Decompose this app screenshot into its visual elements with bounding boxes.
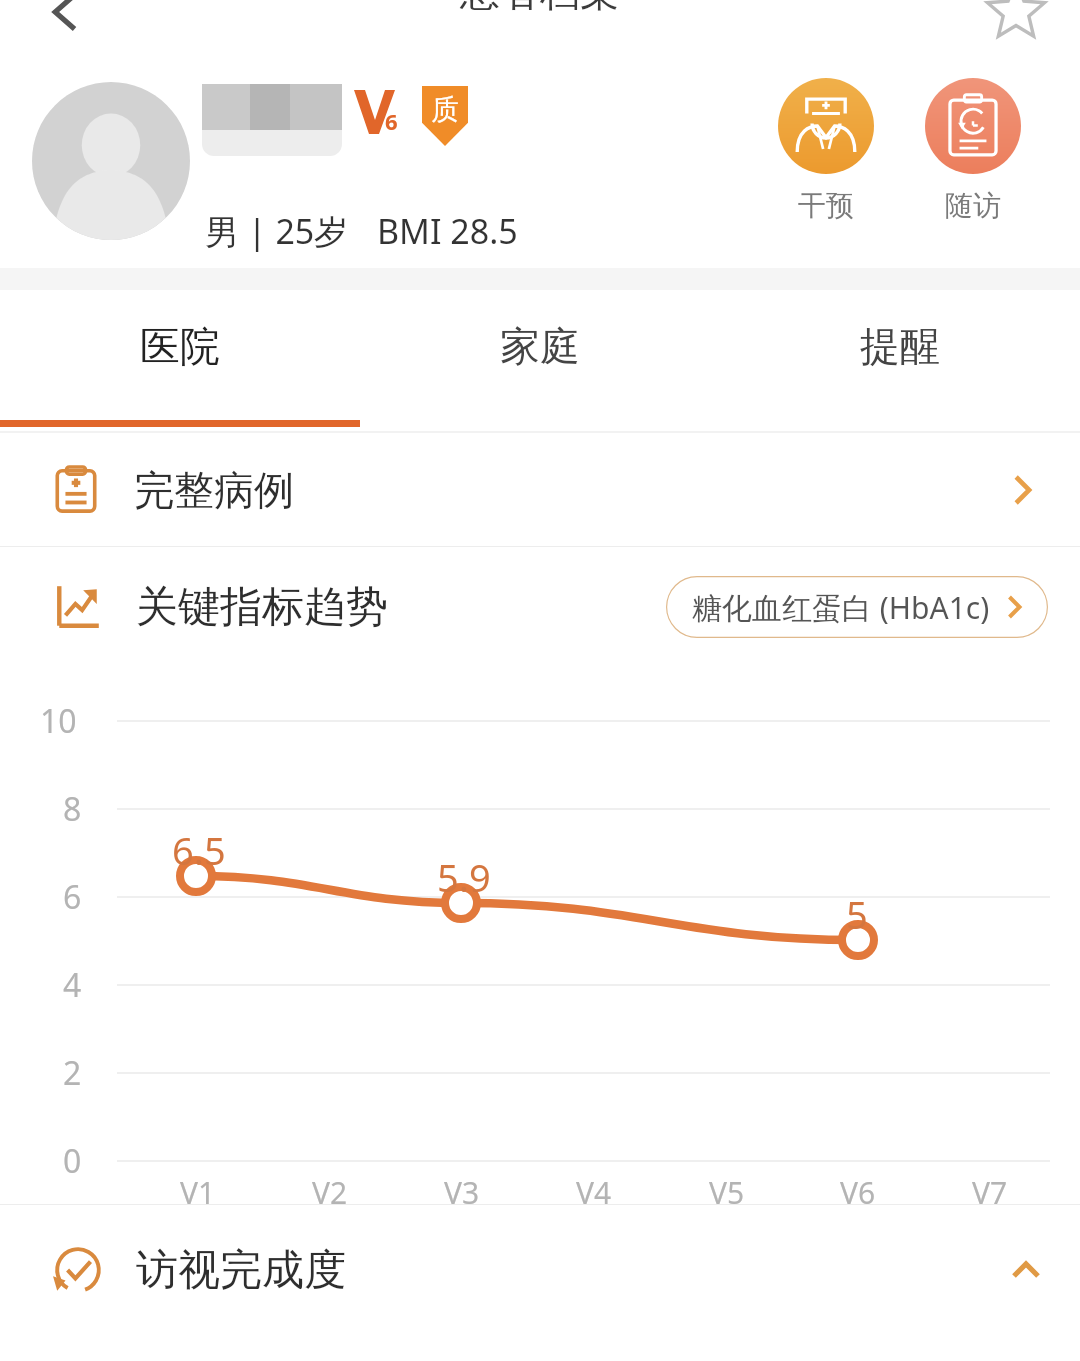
staticText: 访视完成度	[136, 1244, 346, 1297]
staticText: 6	[385, 106, 398, 136]
staticText: 10	[40, 699, 77, 743]
staticText: V7	[972, 1172, 1008, 1213]
staticText: V3	[444, 1172, 480, 1213]
staticText: 随访	[945, 188, 1001, 223]
staticText: V2	[312, 1172, 348, 1213]
button[interactable]: 医院	[0, 290, 360, 433]
staticText: V1	[180, 1172, 216, 1213]
staticText: 6.5	[172, 824, 226, 876]
button[interactable]: 家庭	[360, 290, 720, 433]
staticText: 患者档案	[460, 0, 620, 16]
staticText: 2	[63, 1051, 82, 1095]
staticText: 6	[63, 875, 82, 919]
button[interactable]: 糖化血红蛋白 (HbA1c)	[666, 576, 1048, 638]
staticText: 5.9	[437, 851, 491, 903]
staticText: 家庭	[500, 321, 580, 371]
button[interactable]: 干预	[778, 78, 874, 223]
button[interactable]: 提醒	[720, 290, 1080, 433]
staticText: 糖化血红蛋白 (HbA1c)	[692, 587, 990, 628]
staticText: V5	[709, 1172, 745, 1213]
staticText: 5	[846, 888, 868, 940]
button[interactable]: 完整病例	[0, 433, 1080, 546]
button[interactable]: Patient avatar	[32, 82, 190, 240]
staticText: 4	[63, 963, 82, 1007]
staticText: BMI 28.5	[377, 208, 518, 254]
button[interactable]: Collapse	[990, 1234, 1062, 1306]
button[interactable]: 访视完成度	[0, 1205, 1080, 1335]
button[interactable]: Favorite	[970, 0, 1062, 40]
button[interactable]: 随访	[925, 78, 1021, 223]
staticText: 男 | 25岁	[205, 208, 349, 254]
button[interactable]: Back	[18, 0, 110, 40]
staticText: 干预	[798, 188, 854, 223]
staticText: 提醒	[860, 321, 940, 371]
staticText: 8	[63, 787, 82, 831]
staticText: 完整病例	[134, 465, 294, 515]
staticText: V6	[840, 1172, 876, 1213]
staticText: 质	[431, 92, 459, 127]
staticText: 关键指标趋势	[136, 581, 388, 634]
staticText: 0	[63, 1139, 82, 1183]
staticText: V4	[576, 1172, 612, 1213]
staticText: 医院	[140, 321, 220, 371]
